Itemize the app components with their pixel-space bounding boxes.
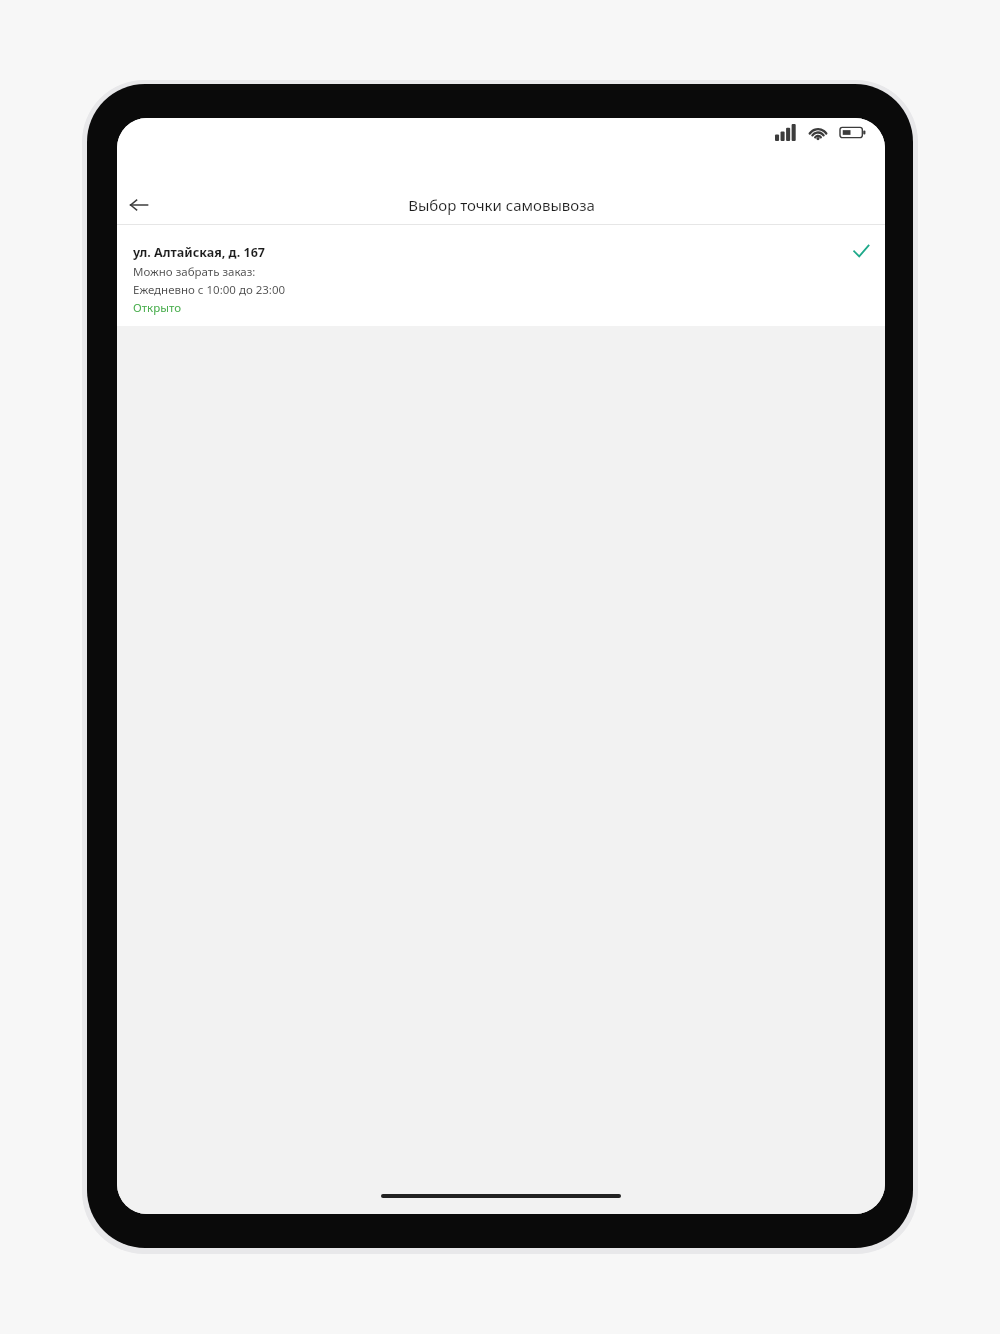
- button[interactable]: ул. Алтайская, д. 167: [117, 225, 885, 326]
- button[interactable]: Selected: [843, 233, 879, 269]
- staticText: ул. Алтайская, д. 167: [133, 244, 265, 261]
- staticText: Выбор точки самовывоза: [408, 195, 595, 215]
- staticText: Открыто: [133, 300, 181, 316]
- staticText: Ежедневно с 10:00 до 23:00: [133, 282, 286, 298]
- button[interactable]: Back: [117, 186, 161, 224]
- staticText: Можно забрать заказ:: [133, 264, 256, 280]
